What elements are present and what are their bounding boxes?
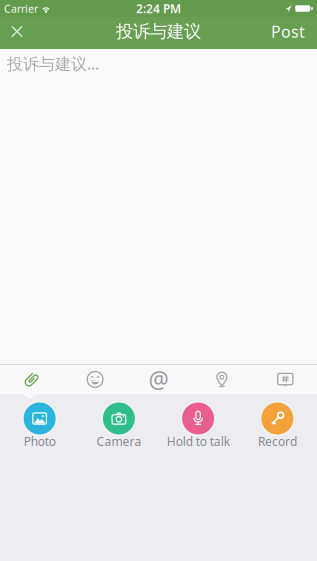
button[interactable]: Post: [271, 21, 317, 42]
staticText: Photo: [24, 433, 56, 449]
button[interactable]: Camera: [79, 401, 158, 452]
button[interactable]: Record: [238, 401, 317, 452]
staticText: 投诉与建议...: [7, 53, 99, 74]
button[interactable]: [63, 369, 127, 389]
button[interactable]: [190, 369, 254, 389]
staticText: Carrier: [4, 1, 38, 16]
staticText: 投诉与建议: [116, 21, 201, 42]
button[interactable]: [0, 25, 31, 37]
button[interactable]: [254, 369, 317, 389]
staticText: Record: [258, 433, 297, 449]
staticText: Camera: [96, 433, 141, 449]
button[interactable]: @: [127, 368, 190, 390]
staticText: 2:24 PM: [136, 0, 181, 16]
staticText: @: [148, 364, 168, 394]
button[interactable]: Photo: [0, 401, 79, 452]
staticText: Post: [271, 21, 305, 42]
staticText: Hold to talk: [167, 433, 230, 449]
button[interactable]: Hold to talk: [158, 401, 238, 452]
button[interactable]: [0, 369, 63, 389]
